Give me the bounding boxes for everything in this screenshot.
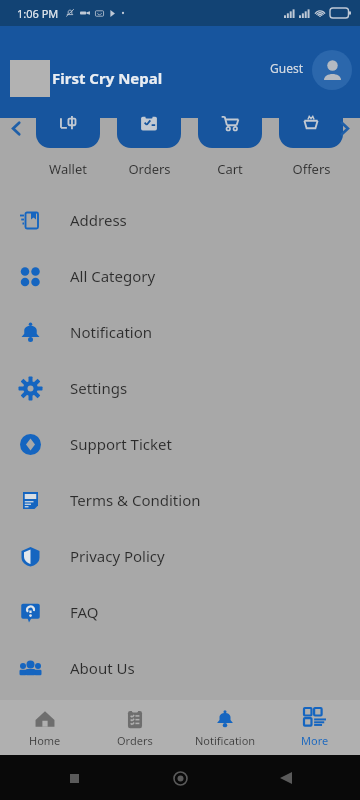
button[interactable]: Profile: [312, 50, 352, 90]
button[interactable]: More: [270, 700, 360, 755]
button[interactable]: Previous: [3, 115, 29, 141]
staticText: Notification: [70, 322, 153, 342]
staticText: About Us: [70, 658, 135, 678]
staticText: Terms & Condition: [70, 490, 201, 510]
staticText: Cart: [217, 160, 243, 178]
staticText: Home: [29, 733, 61, 748]
staticText: All Category: [70, 266, 156, 286]
staticText: Settings: [70, 378, 128, 398]
staticText: Address: [70, 210, 127, 230]
button[interactable]: Back: [272, 764, 300, 792]
button[interactable]: Orders: [90, 700, 180, 755]
button[interactable]: Recents: [60, 764, 88, 792]
staticText: FAQ: [70, 602, 99, 622]
button[interactable]: About Us: [0, 640, 360, 696]
staticText: First Cry Nepal: [52, 68, 163, 88]
staticText: Orders: [128, 160, 171, 178]
button[interactable]: FAQ: [0, 584, 360, 640]
button[interactable]: Cart: [198, 110, 262, 148]
button[interactable]: Terms & Condition: [0, 472, 360, 528]
staticText: Offers: [292, 160, 331, 178]
staticText: Support Ticket: [70, 434, 172, 454]
staticText: Privacy Policy: [70, 546, 165, 566]
button[interactable]: Offers: [279, 110, 343, 148]
button[interactable]: Home: [166, 764, 194, 792]
button[interactable]: Address: [0, 192, 360, 248]
staticText: Orders: [117, 733, 153, 748]
button[interactable]: Privacy Policy: [0, 528, 360, 584]
button[interactable]: Settings: [0, 360, 360, 416]
button[interactable]: Support Ticket: [0, 416, 360, 472]
staticText: 1:06 PM: [17, 6, 59, 21]
button[interactable]: Notification: [180, 700, 270, 755]
button[interactable]: All Category: [0, 248, 360, 304]
staticText: Notification: [195, 733, 256, 748]
button[interactable]: Wallet: [36, 110, 100, 148]
button[interactable]: Home: [0, 700, 90, 755]
button[interactable]: Notification: [0, 304, 360, 360]
staticText: Wallet: [49, 160, 87, 178]
staticText: More: [301, 733, 329, 748]
staticText: Guest: [270, 60, 304, 76]
button[interactable]: Orders: [117, 110, 181, 148]
button[interactable]: Next: [331, 115, 357, 141]
